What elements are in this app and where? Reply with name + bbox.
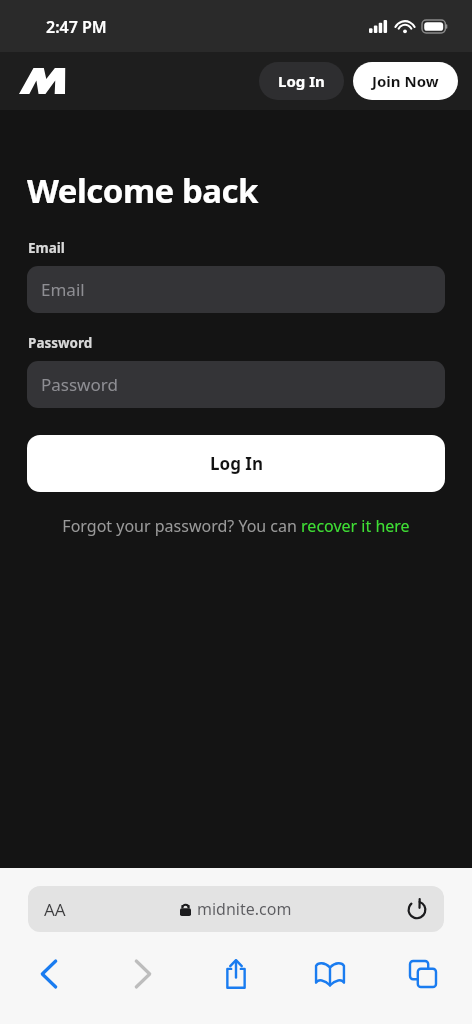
staticText: Email xyxy=(41,278,85,301)
staticText: AA xyxy=(44,898,66,921)
staticText: Password xyxy=(28,334,93,352)
staticText: Password xyxy=(41,373,118,396)
button[interactable]: Share xyxy=(207,949,265,999)
staticText: Forgot your password? You can recover it… xyxy=(62,515,410,537)
button[interactable]: Password xyxy=(27,361,445,408)
button[interactable]: AA xyxy=(28,886,444,932)
button[interactable]: Bookmarks xyxy=(301,949,359,999)
button[interactable]: Back xyxy=(20,949,78,999)
staticText: 2:47 PM xyxy=(46,16,107,38)
button[interactable]: Join Now xyxy=(353,62,458,100)
staticText: Welcome back xyxy=(27,168,259,213)
button[interactable]: Log In xyxy=(259,62,344,100)
staticText: Email xyxy=(28,239,65,257)
button[interactable]: Midnite home xyxy=(18,66,66,96)
staticText: midnite.com xyxy=(197,898,292,920)
staticText: Log In xyxy=(210,452,263,475)
button[interactable]: Reload xyxy=(402,894,432,924)
button[interactable]: Tabs xyxy=(394,949,452,999)
button[interactable]: Forward xyxy=(114,949,172,999)
staticText: Log In xyxy=(278,71,325,91)
button[interactable]: Forgot your password? You can recover it… xyxy=(0,515,472,537)
button[interactable]: Email xyxy=(27,266,445,313)
button[interactable]: Log In xyxy=(27,435,445,492)
staticText: Join Now xyxy=(372,71,439,91)
